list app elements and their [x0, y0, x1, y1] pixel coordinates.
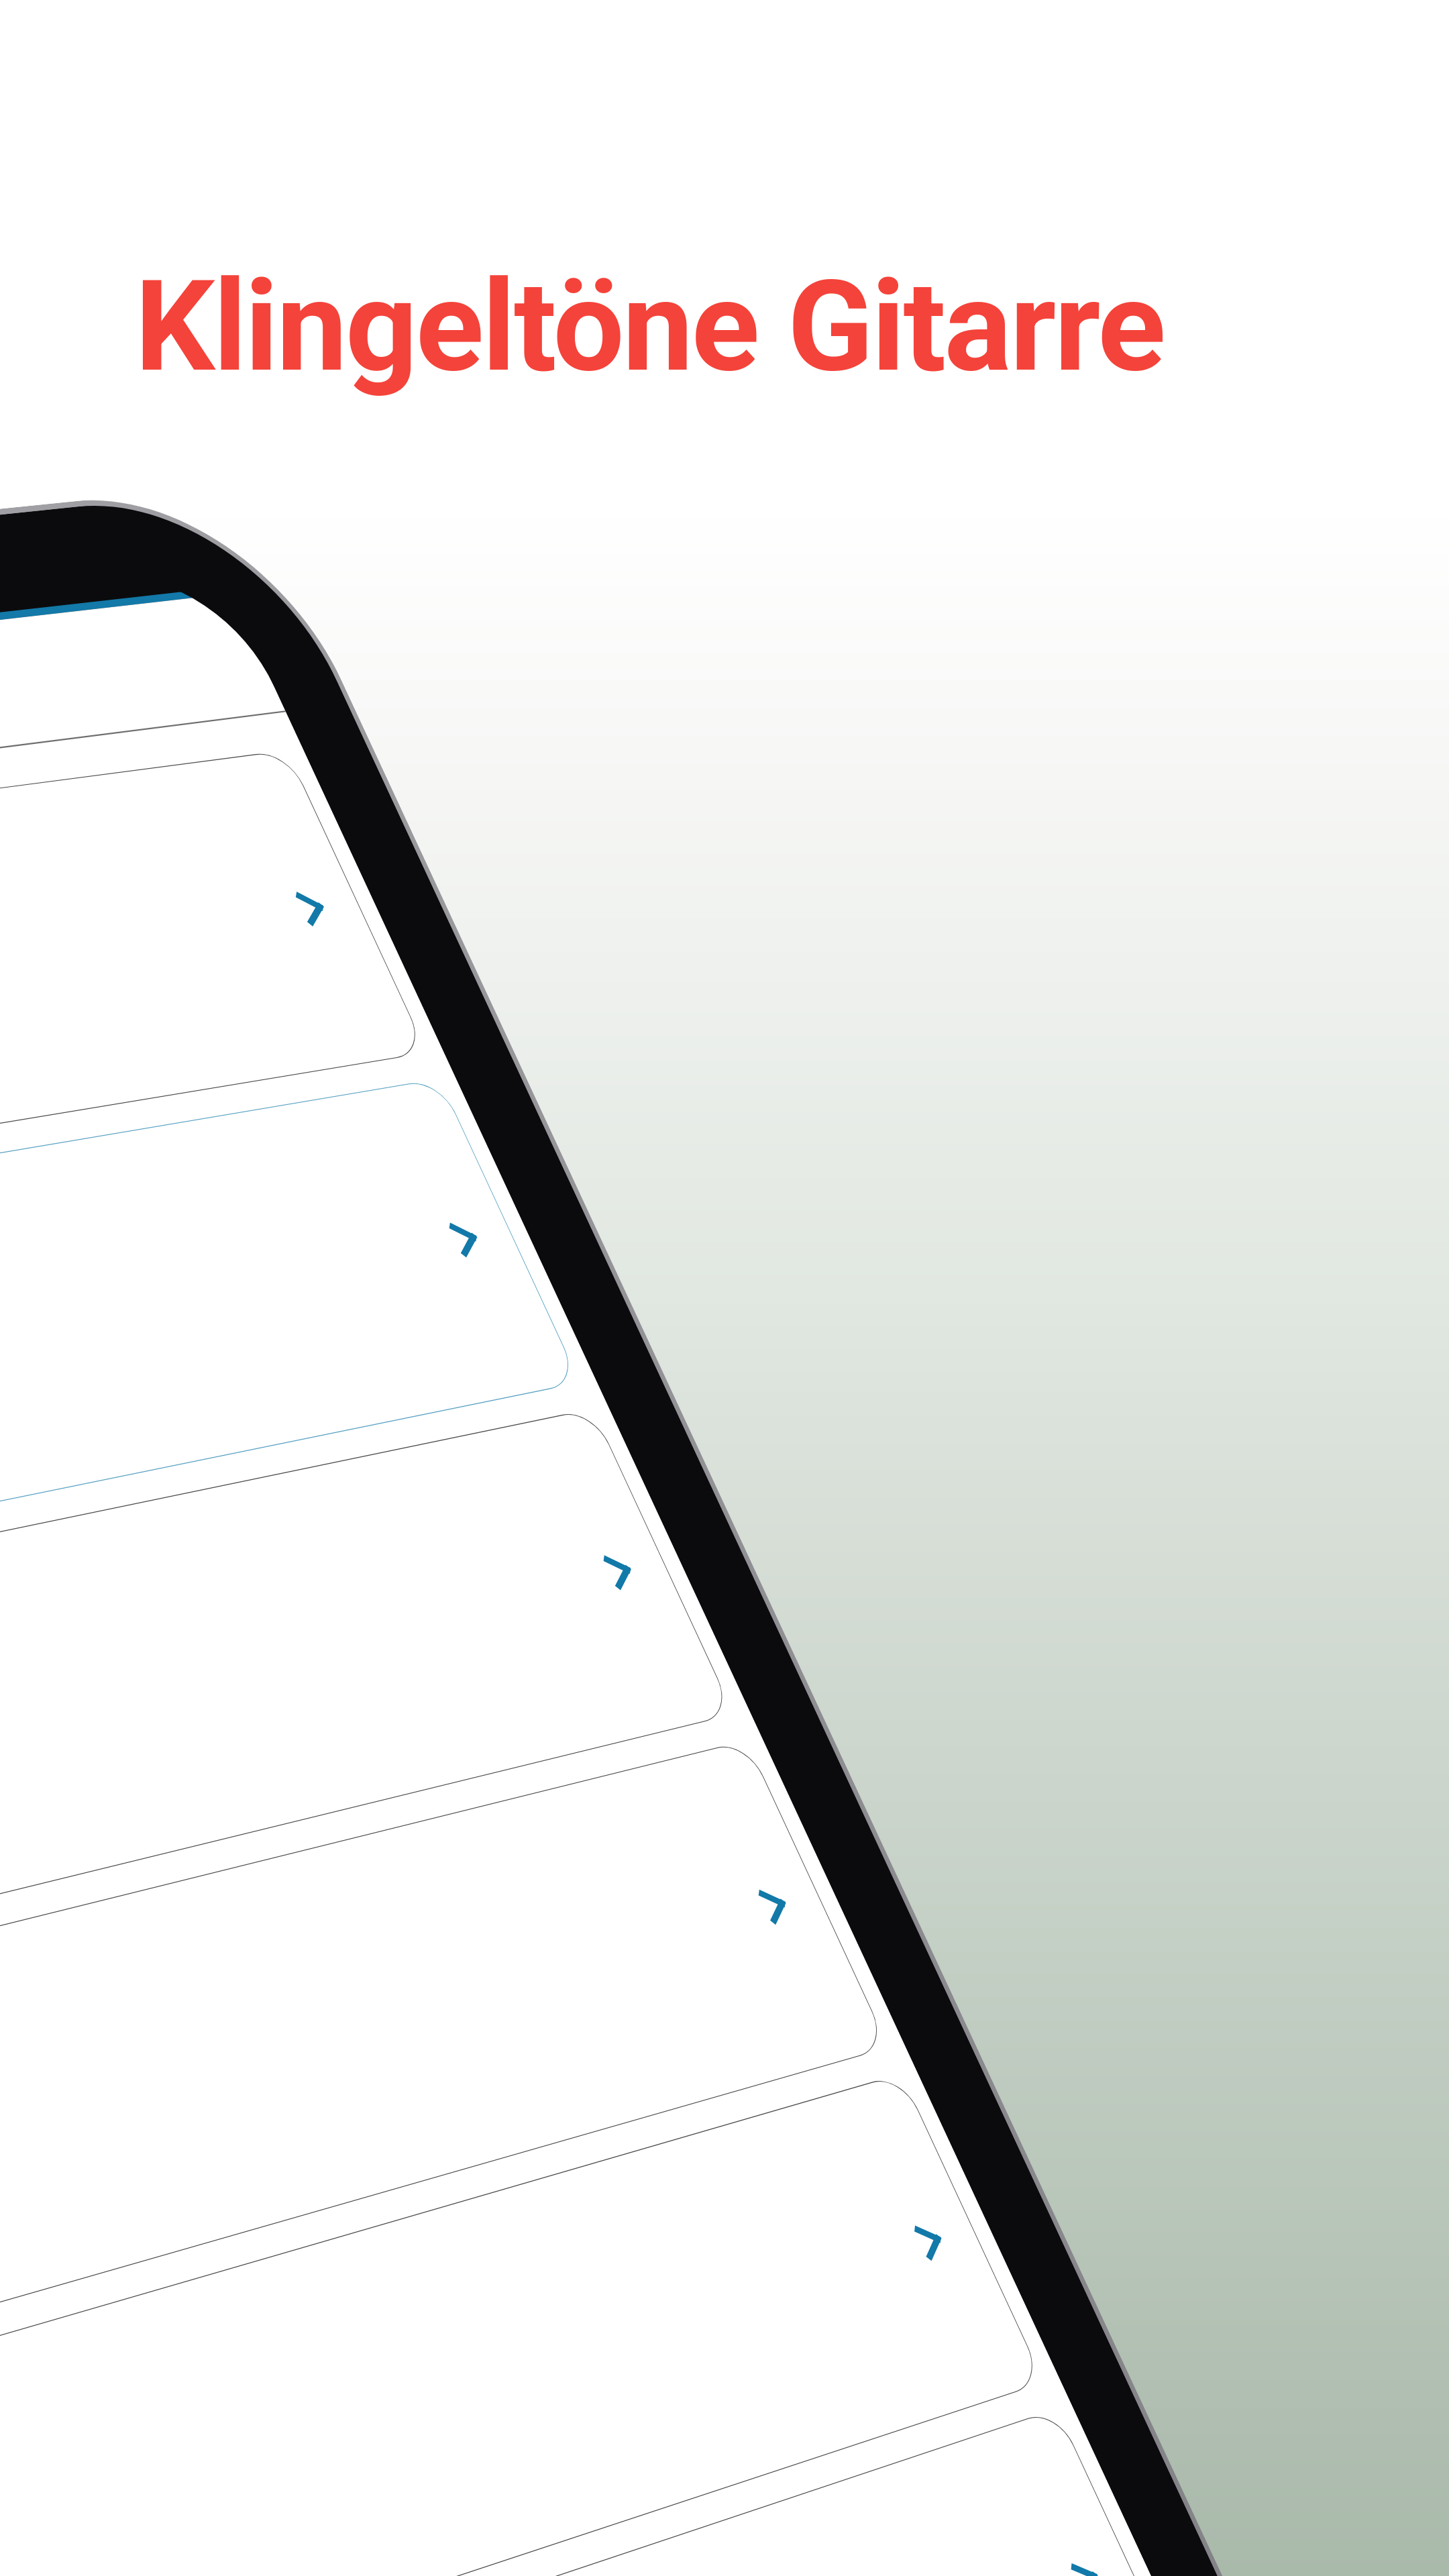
- staticText: Klingeltöne Gitarre: [135, 253, 1165, 400]
- button[interactable]: Open: [0, 1078, 581, 1727]
- button[interactable]: Open: [0, 2074, 1045, 2576]
- other: Open: [440, 1216, 492, 1261]
- other: Open: [287, 886, 338, 930]
- button[interactable]: Open: [0, 1740, 889, 2517]
- other: Open: [750, 1881, 800, 1929]
- other: Open: [595, 1548, 646, 1595]
- button[interactable]: Open: [0, 1408, 734, 2121]
- other: Open: [1062, 2553, 1112, 2576]
- button[interactable]: Open: [0, 750, 427, 1336]
- button[interactable]: Open: [0, 2409, 1201, 2576]
- other: Open: [906, 2216, 956, 2266]
